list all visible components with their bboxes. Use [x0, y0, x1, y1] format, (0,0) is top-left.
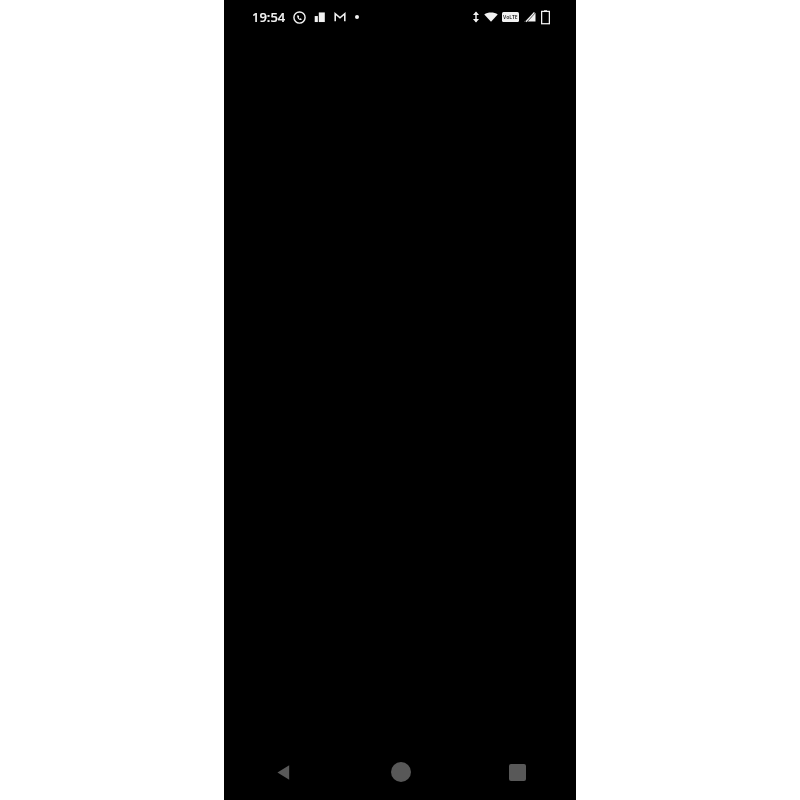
- staticText: VoLTE: [503, 14, 518, 21]
- button[interactable]: Home: [342, 744, 459, 800]
- button[interactable]: Back: [224, 744, 342, 800]
- staticText: 19:54: [252, 8, 286, 26]
- button[interactable]: Recent apps: [459, 744, 576, 800]
